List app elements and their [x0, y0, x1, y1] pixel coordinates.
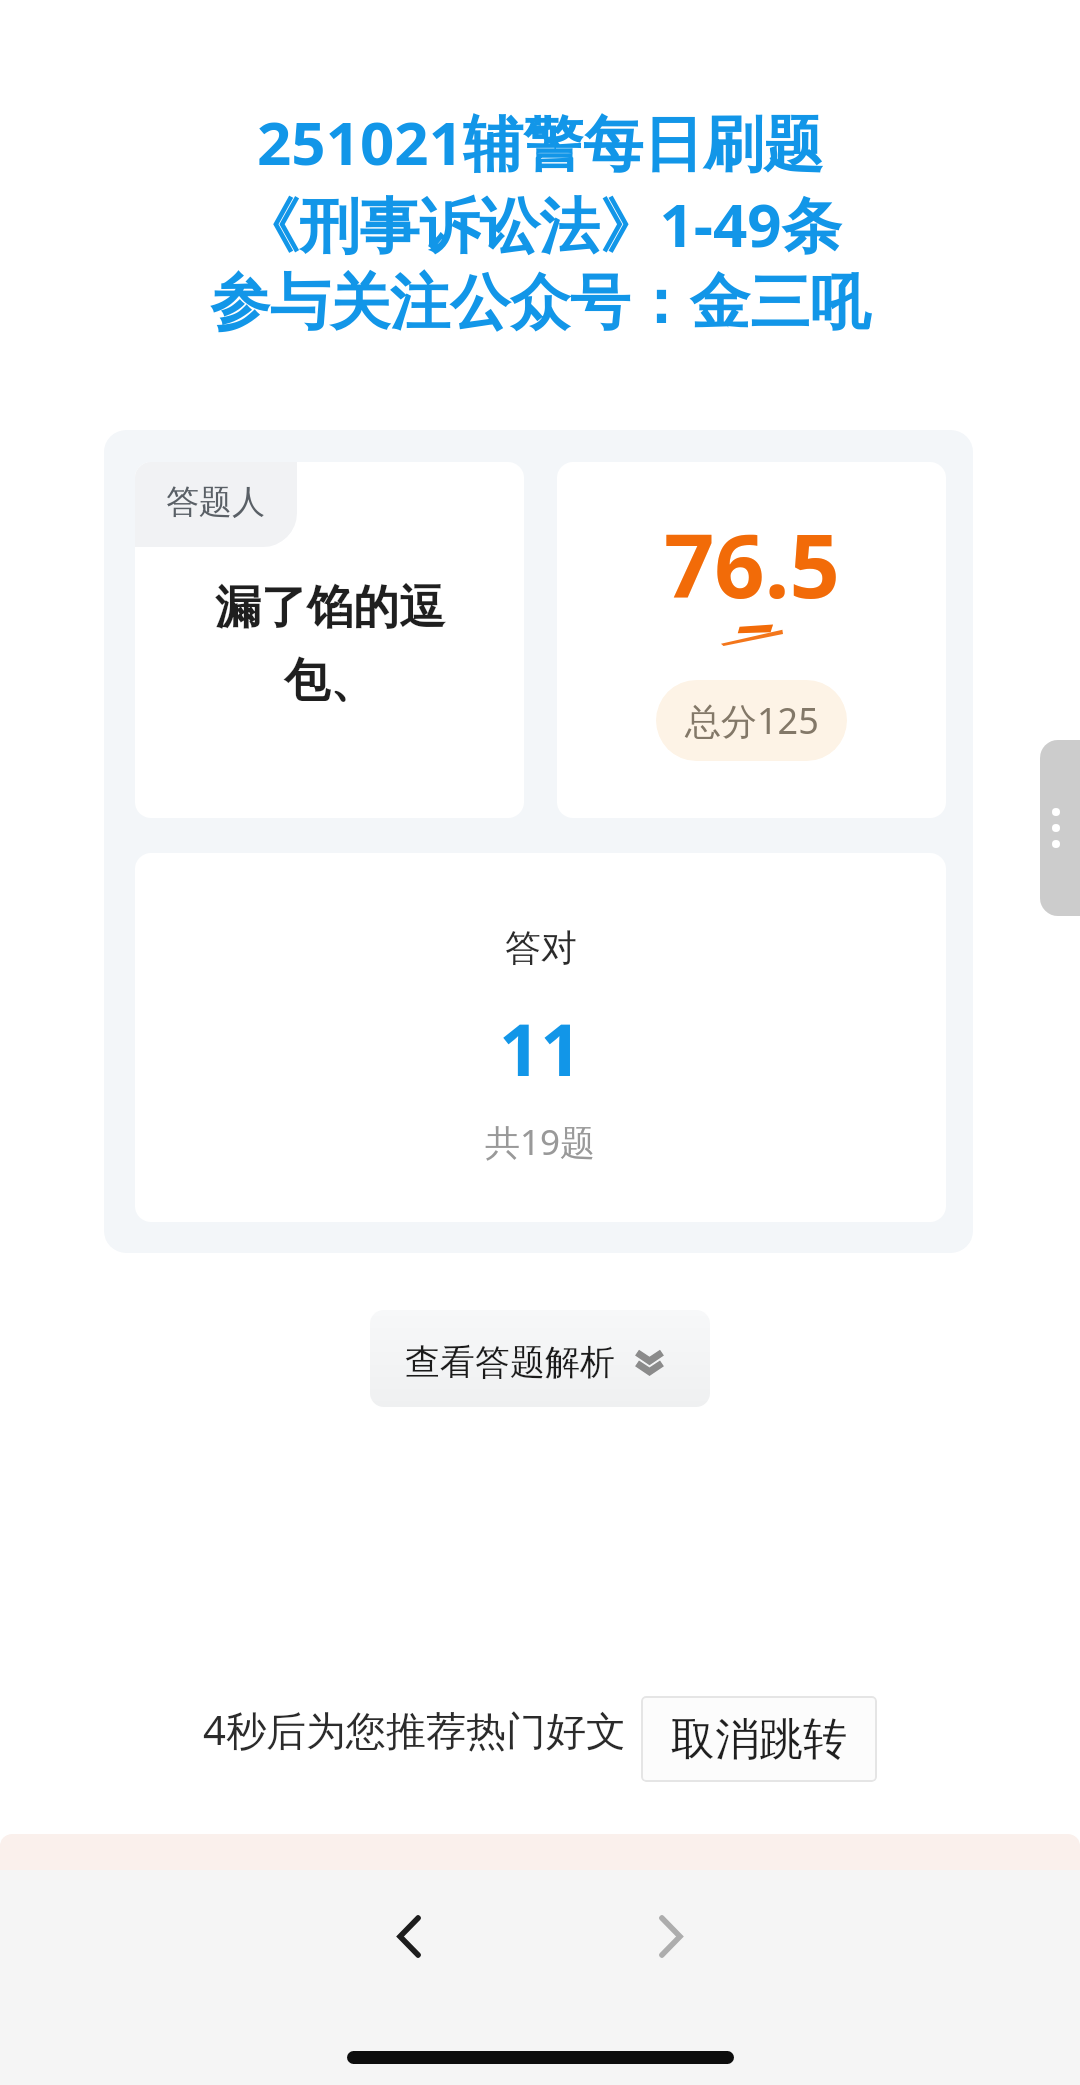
button[interactable]: Forward	[612, 1876, 732, 1996]
staticText: 4秒后为您推荐热门好文	[203, 1702, 626, 1757]
staticText: 总分125	[685, 696, 819, 745]
staticText: 参与关注公众号：金三吼	[210, 265, 870, 341]
staticText: 答题人	[166, 481, 265, 523]
staticText: 251021辅警每日刷题	[257, 101, 823, 183]
button[interactable]: Drag handle	[1040, 740, 1080, 916]
staticText: 查看答题解析	[405, 1340, 615, 1384]
button[interactable]: 取消跳转	[641, 1696, 877, 1782]
staticText: 取消跳转	[671, 1712, 847, 1767]
staticText: 答对	[505, 925, 577, 970]
staticText: 共19题	[485, 1118, 596, 1166]
staticText: 11	[499, 999, 582, 1097]
staticText: 76.5	[664, 504, 840, 624]
button[interactable]: Back	[348, 1876, 468, 1996]
button[interactable]: 查看答题解析	[370, 1310, 710, 1407]
staticText: 《刑事诉讼法》1-49条	[239, 183, 842, 265]
staticText: 漏了馅的逗包、	[214, 579, 446, 709]
